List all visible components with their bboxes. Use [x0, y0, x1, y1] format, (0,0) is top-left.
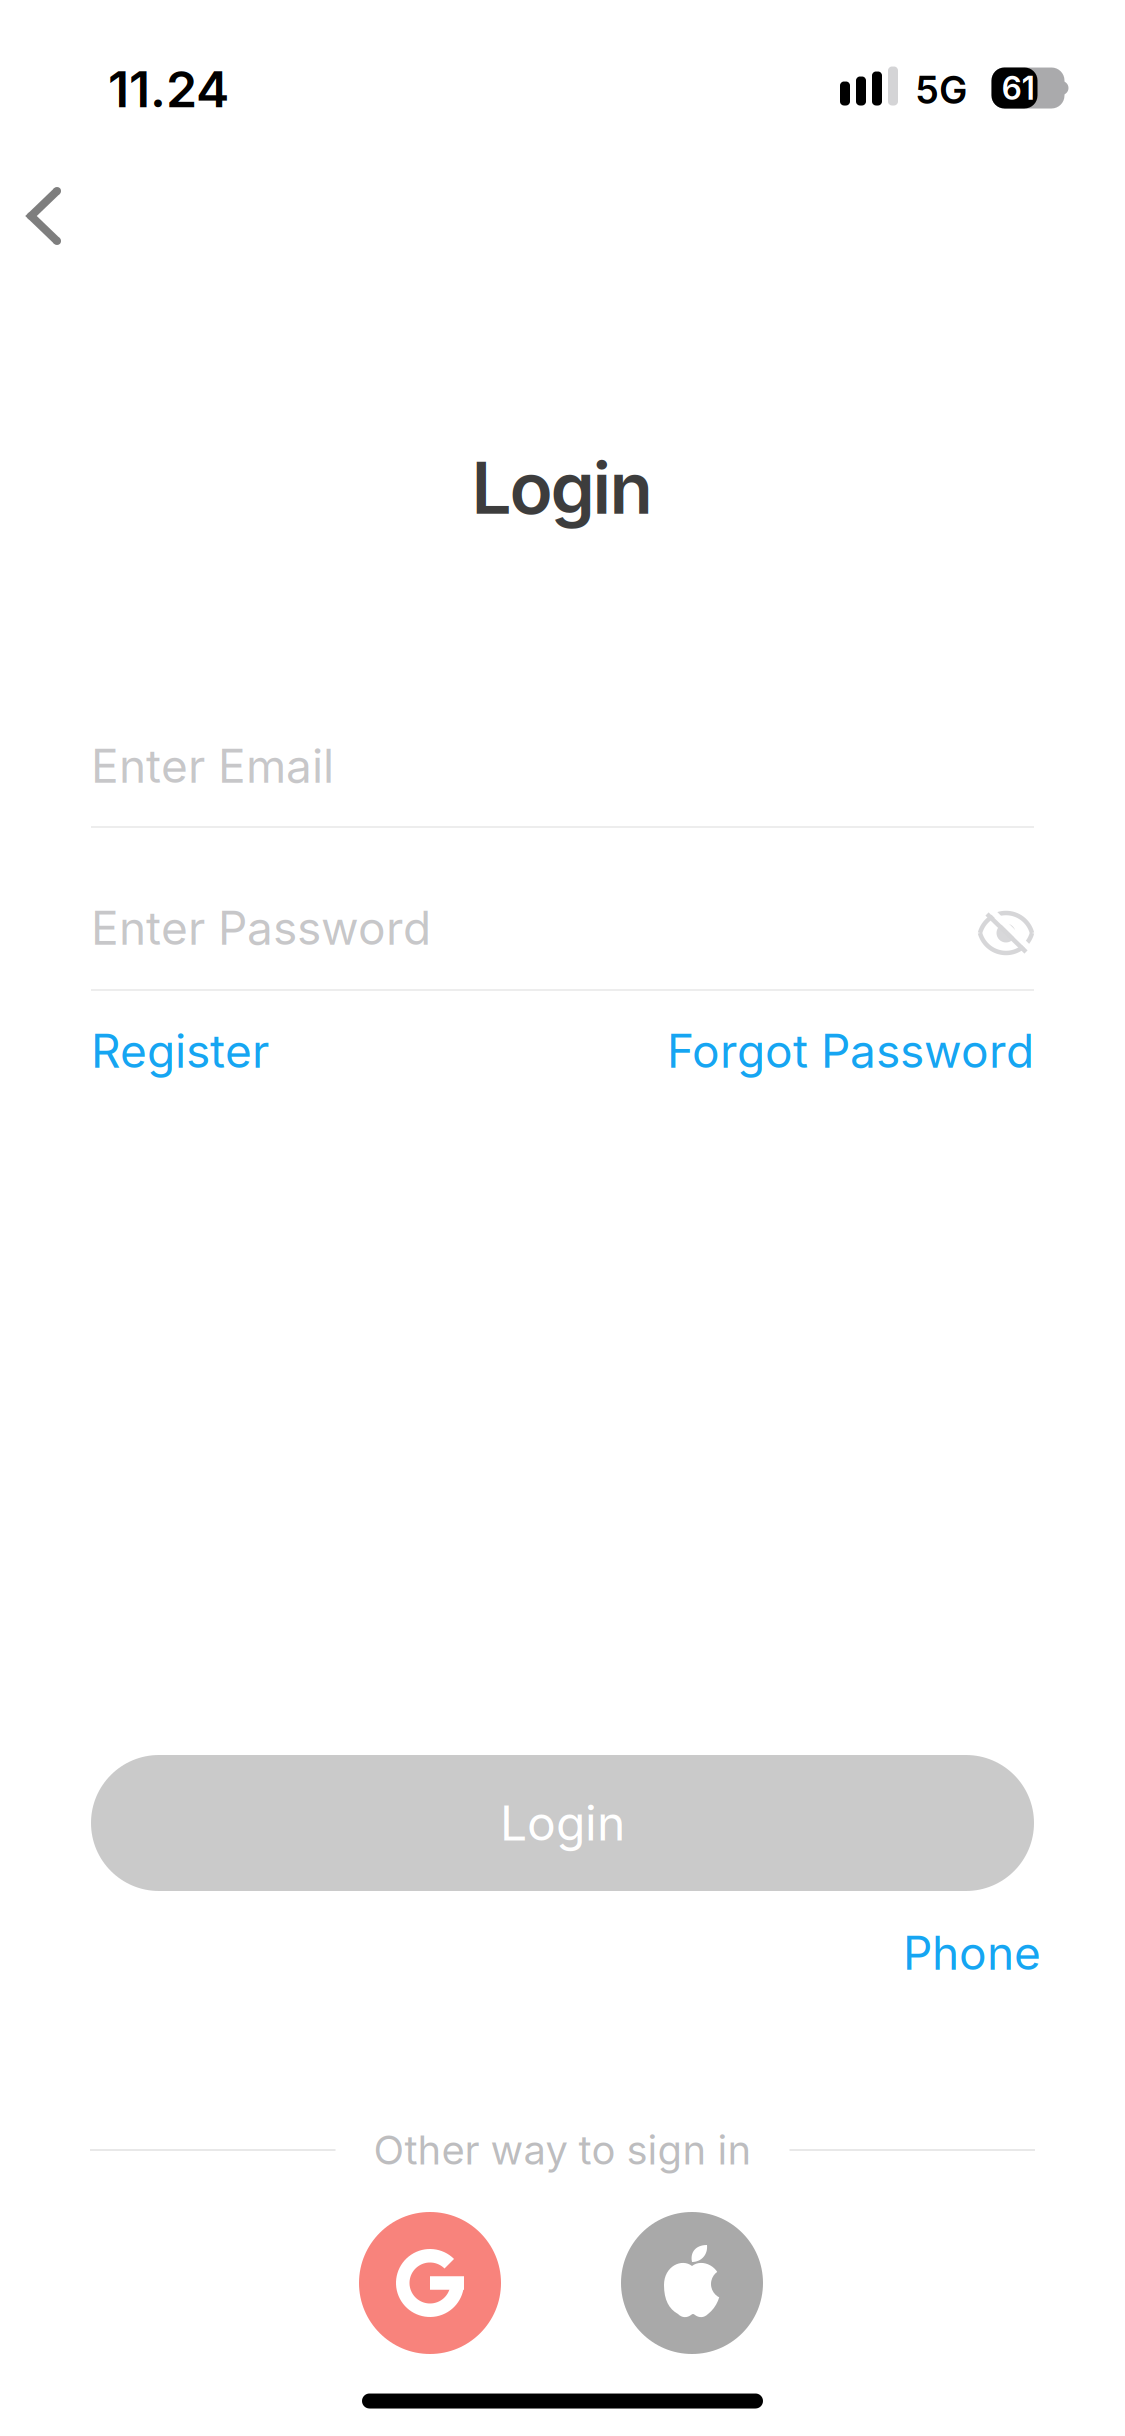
button[interactable]: Show password	[978, 909, 1034, 957]
button[interactable]: Forgot Password	[667, 1024, 1034, 1078]
button[interactable]: Login	[91, 1755, 1034, 1891]
button[interactable]: Register	[91, 1024, 269, 1078]
button[interactable]: Sign in with Google	[359, 2212, 501, 2354]
staticText: Enter Email	[91, 739, 334, 793]
staticText: 5G	[915, 68, 967, 112]
button[interactable]: Back	[18, 185, 70, 247]
staticText: Enter Password	[91, 901, 431, 955]
staticText: Login	[500, 1795, 625, 1851]
staticText: 11.24	[108, 59, 229, 118]
staticText: Login	[471, 446, 652, 530]
button[interactable]: Phone	[903, 1926, 1041, 1980]
staticText: 61	[1001, 69, 1035, 107]
staticText: Phone	[903, 1926, 1041, 1980]
staticText: Register	[91, 1024, 269, 1078]
staticText: Forgot Password	[667, 1024, 1034, 1078]
button[interactable]: Sign in with Apple	[621, 2212, 763, 2354]
staticText: Other way to sign in	[373, 2126, 751, 2174]
